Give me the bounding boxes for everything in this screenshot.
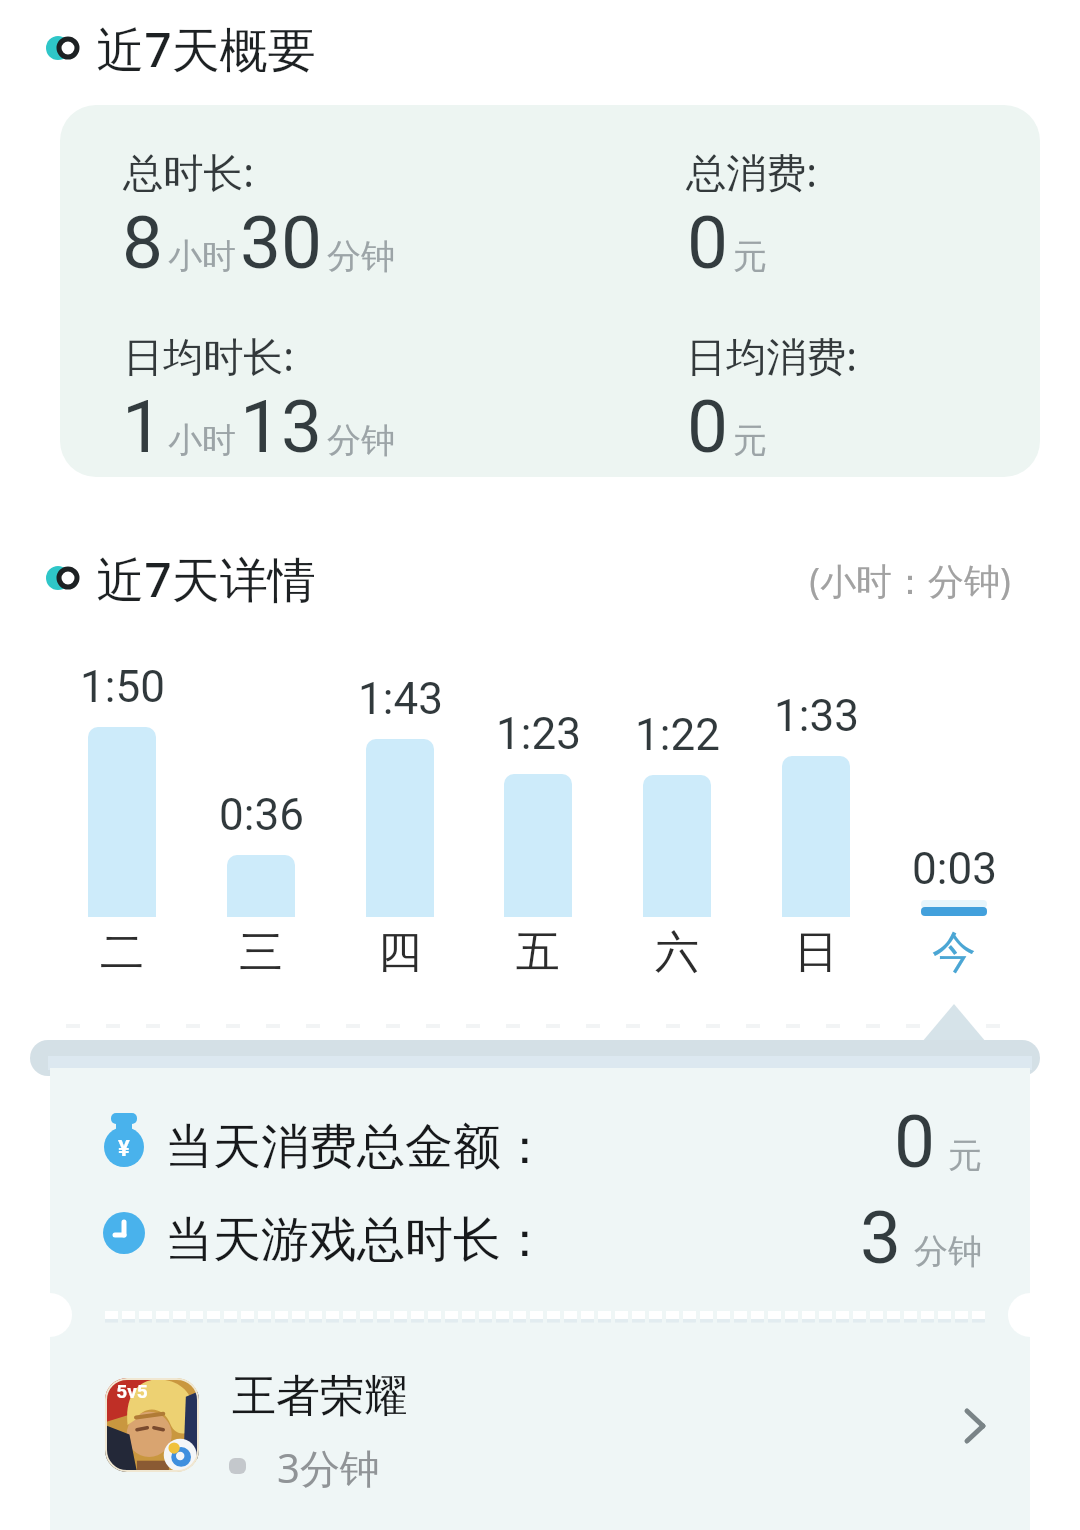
staticText: 13 [240, 384, 323, 470]
staticText: 六 [655, 925, 699, 980]
staticText: 0:03 [912, 843, 997, 895]
staticText: 总时长: [123, 144, 254, 199]
staticText: 当天消费总金额： [165, 1117, 549, 1177]
staticText: 分钟 [914, 1230, 982, 1273]
staticText: 近7天概要 [96, 16, 316, 80]
button[interactable] [60, 105, 1040, 477]
staticText: 当天游戏总时长： [165, 1210, 549, 1270]
staticText: 1:33 [774, 690, 859, 742]
staticText: 3分钟 [277, 1440, 380, 1495]
staticText: 日 [794, 925, 838, 980]
staticText: 总消费: [686, 144, 817, 199]
staticText: 1:22 [635, 709, 720, 761]
staticText: 近7天详情 [96, 546, 316, 610]
button[interactable] [60, 1358, 1020, 1508]
staticText: 分钟 [327, 419, 395, 462]
staticText: 日均消费: [686, 328, 857, 383]
staticText: 王者荣耀 [232, 1369, 408, 1424]
staticText: 3 [860, 1195, 902, 1281]
staticText: 8 [122, 200, 164, 286]
button[interactable]: 5v5 [105, 1378, 199, 1472]
staticText: 0 [894, 1099, 936, 1185]
staticText: 元 [733, 419, 767, 462]
staticText: 0 [687, 200, 729, 286]
staticText: ¥ [118, 1136, 130, 1162]
staticText: 1:43 [358, 673, 443, 725]
staticText: (小时：分钟) [809, 556, 1011, 605]
staticText: 今 [932, 925, 976, 980]
staticText: 1:50 [80, 661, 165, 713]
staticText: 元 [948, 1134, 982, 1177]
staticText: 0:36 [219, 789, 304, 841]
staticText: 小时 [168, 235, 236, 278]
staticText: 5v5 [116, 1380, 148, 1402]
staticText: 30 [240, 200, 323, 286]
staticText: 小时 [168, 419, 236, 462]
staticText: 1 [122, 384, 164, 470]
staticText: 三 [239, 925, 283, 980]
staticText: 0 [687, 384, 729, 470]
staticText: 五 [516, 925, 560, 980]
staticText: 1:23 [496, 708, 581, 760]
staticText: 二 [100, 925, 144, 980]
staticText: 日均时长: [123, 328, 294, 383]
staticText: 分钟 [327, 235, 395, 278]
staticText: 元 [733, 235, 767, 278]
staticText: 四 [378, 925, 422, 980]
